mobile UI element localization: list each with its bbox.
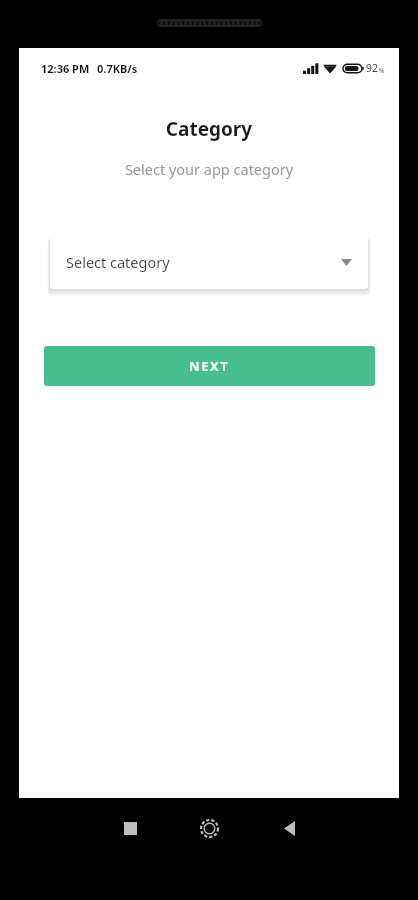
staticText: %: [379, 66, 385, 75]
staticText: Select your app category: [19, 159, 399, 179]
button[interactable]: NEXT: [44, 346, 375, 386]
staticText: NEXT: [189, 357, 230, 375]
button[interactable]: Select category: [50, 235, 368, 289]
button[interactable]: Recent apps: [112, 810, 148, 846]
staticText: Category: [19, 116, 399, 142]
staticText: 92: [366, 61, 379, 75]
button[interactable]: Home: [191, 810, 227, 846]
staticText: 12:36 PM: [41, 61, 90, 76]
button[interactable]: Back: [271, 810, 307, 846]
staticText: 0.7KB/s: [97, 61, 138, 76]
staticText: Select category: [66, 252, 170, 272]
